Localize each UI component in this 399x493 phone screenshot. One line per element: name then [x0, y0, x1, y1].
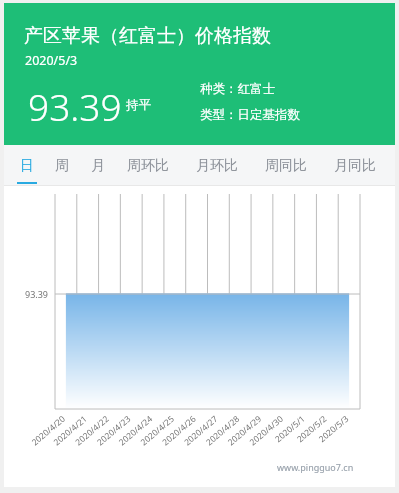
staticText: 月 [91, 157, 105, 175]
staticText: 月环比 [196, 157, 238, 175]
staticText: 产区苹果（红富士）价格指数 [24, 24, 271, 48]
button[interactable]: 日 [16, 145, 38, 186]
staticText: 2020/5/3 [25, 52, 78, 69]
button[interactable]: 月 [87, 145, 109, 186]
button[interactable]: 周同比 [260, 145, 312, 186]
staticText: 日 [20, 157, 34, 175]
staticText: 持平 [126, 97, 151, 113]
staticText: 周 [55, 157, 69, 175]
staticText: 种类：红富士 [200, 81, 275, 97]
button[interactable]: 周环比 [122, 145, 174, 186]
button[interactable]: 月同比 [329, 145, 381, 186]
button[interactable]: 周 [51, 145, 73, 186]
staticText: 93.39 [28, 81, 122, 131]
staticText: 类型：日定基指数 [200, 107, 300, 123]
button[interactable]: 月环比 [191, 145, 243, 186]
staticText: 月同比 [334, 157, 376, 175]
staticText: 周同比 [265, 157, 307, 175]
staticText: 周环比 [127, 157, 169, 175]
